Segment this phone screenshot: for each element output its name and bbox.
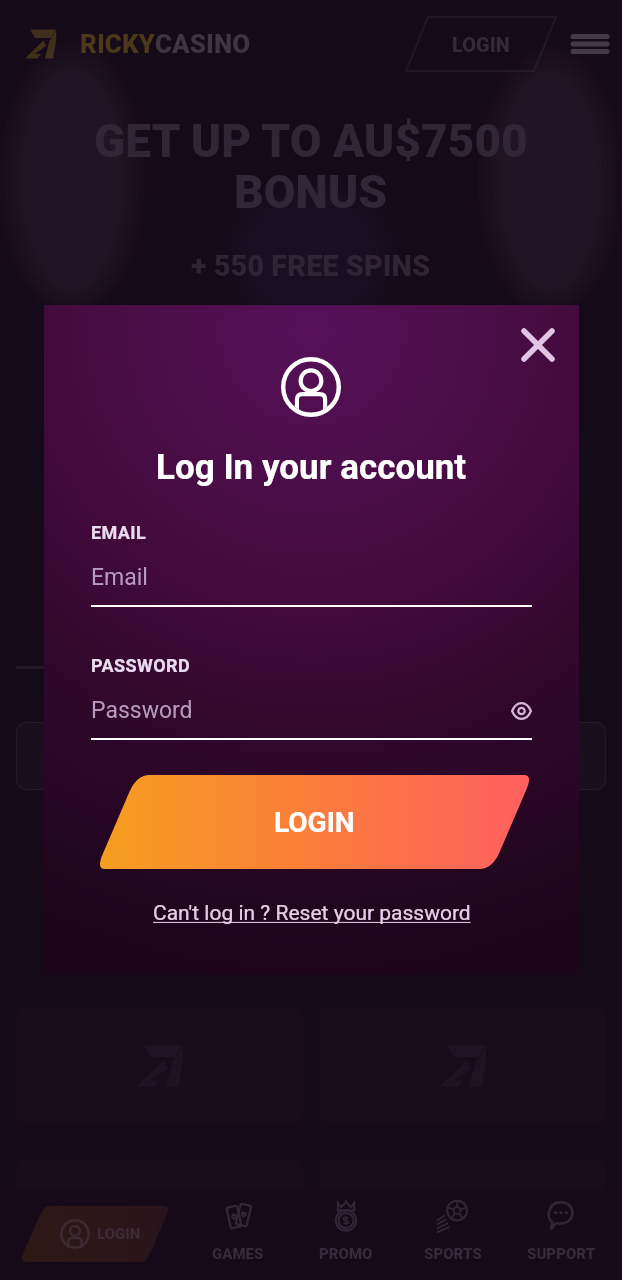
staticText: LOGIN xyxy=(452,33,510,56)
staticText: BONUS xyxy=(234,165,388,219)
staticText: Log In your account xyxy=(156,447,467,488)
staticText: GAMES xyxy=(212,1245,264,1263)
button[interactable]: LOGIN xyxy=(19,1206,171,1262)
button[interactable]: SPORTS xyxy=(401,1192,505,1270)
button[interactable]: SUPPORT xyxy=(509,1192,613,1270)
button[interactable] xyxy=(319,1160,606,1276)
staticText: SPORTS xyxy=(424,1245,482,1263)
button[interactable]: Search xyxy=(16,722,606,790)
staticText: RICKY xyxy=(80,29,155,59)
staticText: Email xyxy=(91,564,148,591)
staticText: LOGIN xyxy=(97,1225,141,1243)
staticText: LOGIN xyxy=(274,806,355,839)
button[interactable]: Show password xyxy=(501,691,541,731)
staticText: PASSWORD xyxy=(91,655,190,676)
staticText: CASINO xyxy=(155,29,251,59)
staticText: Can't log in ? Reset your password xyxy=(153,901,471,926)
button[interactable]: Close xyxy=(508,315,568,375)
staticText: GET UP TO AU$7500 xyxy=(94,114,528,168)
staticText: EMAIL xyxy=(91,522,147,543)
button[interactable]: LOGIN xyxy=(96,775,533,869)
button[interactable]: Menu xyxy=(566,20,614,68)
button[interactable] xyxy=(16,1160,303,1276)
button[interactable]: GAMES xyxy=(186,1192,290,1270)
button[interactable]: LOGIN xyxy=(406,17,556,71)
button[interactable]: Can't log in ? Reset your password xyxy=(149,898,475,929)
button[interactable]: PROMO xyxy=(294,1192,398,1270)
staticText: + 550 FREE SPINS xyxy=(191,249,431,283)
staticText: PROMO xyxy=(319,1245,373,1263)
staticText: Password xyxy=(91,697,193,724)
button[interactable] xyxy=(92,382,318,442)
staticText: SUPPORT xyxy=(527,1245,596,1263)
